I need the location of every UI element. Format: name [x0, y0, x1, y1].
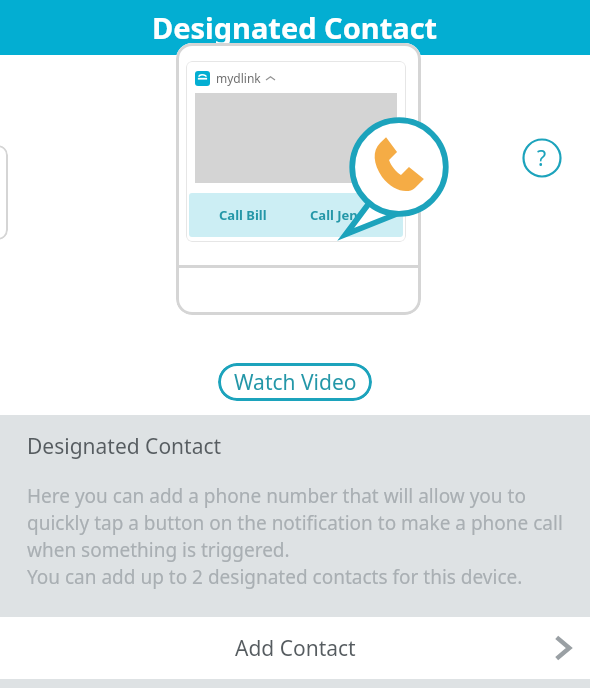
staticText: Here you can add a phone number that wil… — [27, 483, 570, 590]
button[interactable]: mydlink — [186, 61, 406, 242]
button[interactable]: Call Jennifer — [296, 193, 403, 237]
staticText: Call Bill — [219, 206, 267, 224]
staticText: Designated Contact — [27, 432, 222, 461]
button[interactable]: Add Contact — [0, 617, 590, 679]
staticText: Designated Contact — [152, 8, 438, 47]
button[interactable]: Help — [522, 138, 562, 178]
staticText: mydlink — [216, 70, 261, 86]
button[interactable]: Call Bill — [189, 193, 296, 237]
staticText: ? — [537, 144, 547, 173]
staticText: Call Jennifer — [310, 206, 389, 224]
staticText: Add Contact — [235, 634, 356, 663]
staticText: Watch Video — [234, 368, 357, 397]
button[interactable]: Watch Video — [218, 363, 372, 401]
